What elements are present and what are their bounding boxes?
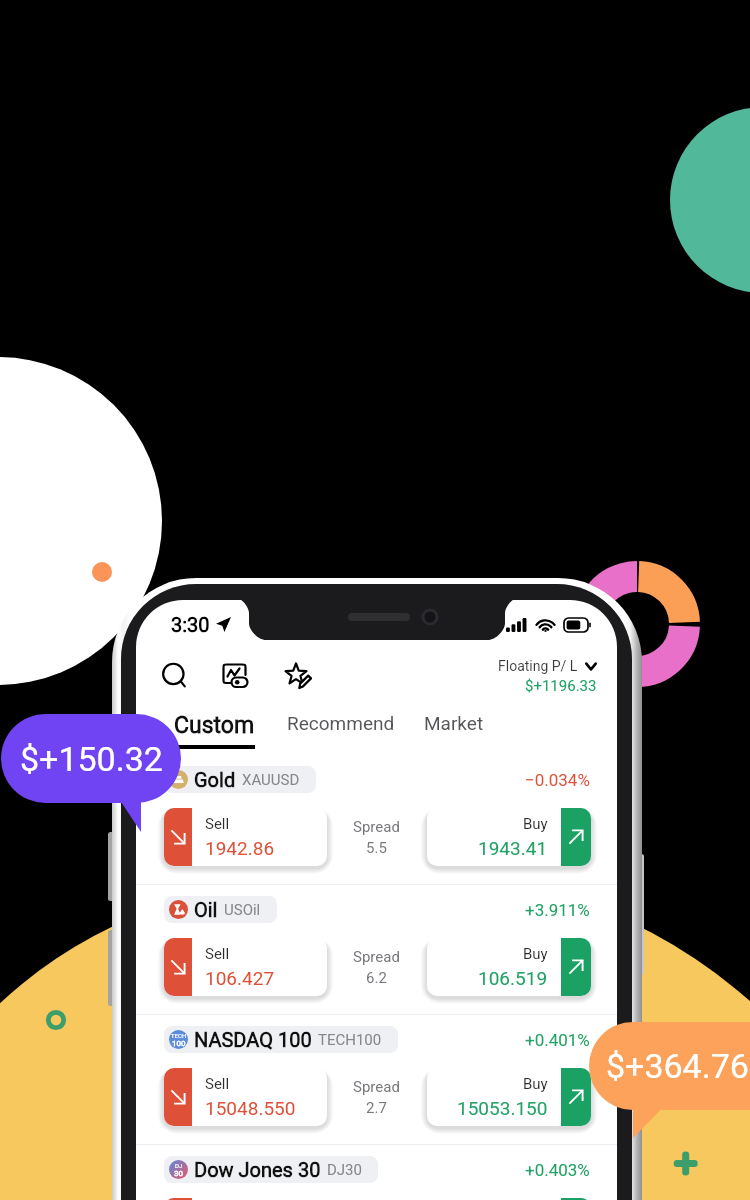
- staticText: 3:30: [171, 613, 210, 636]
- staticText: Custom: [174, 712, 255, 739]
- button[interactable]: Buy: [427, 1068, 591, 1126]
- staticText: 2.7: [366, 1099, 387, 1117]
- staticText: 6.2: [366, 969, 387, 987]
- button[interactable]: Sell: [164, 1068, 327, 1126]
- staticText: XAUUSD: [242, 771, 300, 789]
- staticText: 5.5: [366, 839, 387, 857]
- staticText: USOil: [224, 901, 261, 919]
- button[interactable]: Edit watchlist: [276, 654, 320, 698]
- staticText: NASDAQ 100: [194, 1028, 312, 1051]
- staticText: Buy: [523, 1075, 548, 1093]
- staticText: Gold: [194, 768, 236, 791]
- button[interactable]: Buy: [427, 1198, 591, 1200]
- staticText: $+150.32: [20, 739, 163, 779]
- button[interactable]: Buy: [427, 808, 591, 866]
- staticText: 1943.41: [478, 837, 548, 859]
- staticText: Buy: [523, 815, 548, 833]
- staticText: $+1196.33: [525, 677, 597, 695]
- button[interactable]: Gold: [136, 755, 617, 884]
- button[interactable]: Search: [153, 654, 197, 698]
- staticText: 106.427: [205, 967, 275, 989]
- staticText: DJ: [175, 1162, 183, 1169]
- staticText: Oil: [194, 898, 218, 921]
- button[interactable]: Oil: [136, 885, 617, 1014]
- staticText: 100: [172, 1039, 186, 1048]
- staticText: 30: [174, 1169, 183, 1178]
- button[interactable]: $+150.32: [1, 714, 181, 803]
- staticText: Sell: [205, 945, 230, 963]
- staticText: TECH100: [318, 1031, 382, 1049]
- staticText: TECH: [171, 1032, 187, 1039]
- staticText: Dow Jones 30: [194, 1158, 321, 1181]
- button[interactable]: Floating P/ L: [498, 658, 597, 695]
- staticText: $+364.76: [606, 1046, 749, 1086]
- button[interactable]: Sell: [164, 1198, 327, 1200]
- button[interactable]: TECH: [136, 1015, 617, 1144]
- button[interactable]: Sell: [164, 938, 327, 996]
- button[interactable]: Market: [424, 712, 484, 734]
- staticText: 15053.150: [457, 1097, 548, 1119]
- staticText: Spread: [353, 1078, 400, 1096]
- staticText: Floating P/ L: [498, 658, 578, 674]
- button[interactable]: DJ: [136, 1145, 617, 1200]
- staticText: 15048.550: [205, 1097, 296, 1119]
- staticText: Sell: [205, 1075, 230, 1093]
- staticText: 106.519: [478, 967, 548, 989]
- staticText: −0.034%: [525, 770, 590, 790]
- button[interactable]: Buy: [427, 938, 591, 996]
- staticText: DJ30: [327, 1161, 362, 1179]
- staticText: +3.911%: [525, 900, 590, 920]
- staticText: +0.403%: [525, 1160, 590, 1180]
- staticText: Buy: [523, 945, 548, 963]
- staticText: Market: [424, 712, 484, 734]
- staticText: Sell: [205, 815, 230, 833]
- button[interactable]: Charts: [214, 654, 258, 698]
- button[interactable]: Recommend: [287, 712, 395, 734]
- staticText: +0.401%: [525, 1030, 590, 1050]
- staticText: Recommend: [287, 712, 395, 734]
- button[interactable]: Sell: [164, 808, 327, 866]
- button[interactable]: $+364.76: [590, 1022, 750, 1110]
- staticText: Spread: [353, 948, 400, 966]
- staticText: Spread: [353, 818, 400, 836]
- button[interactable]: Custom: [174, 712, 255, 749]
- staticText: 1942.86: [205, 837, 275, 859]
